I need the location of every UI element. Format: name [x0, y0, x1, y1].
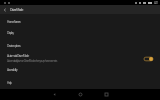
button[interactable]: Device options — [0, 43, 160, 49]
button[interactable]: Display — [0, 30, 160, 36]
staticText: Device options — [7, 44, 21, 48]
button[interactable]: Home — [74, 89, 86, 100]
button[interactable]: Back — [48, 89, 60, 100]
staticText: 4:21 — [154, 1, 158, 5]
staticText: Help — [7, 81, 12, 85]
staticText: Accessibility — [7, 68, 17, 72]
staticText: Display — [7, 31, 14, 35]
button[interactable]: Recents — [100, 89, 112, 100]
button[interactable]: Toggle automatic Driver Mode — [144, 56, 153, 62]
staticText: Automatic Driver Mode — [7, 54, 29, 58]
staticText: Home Screen — [7, 20, 21, 24]
staticText: Driver Mode — [10, 7, 23, 12]
button[interactable]: Accessibility — [0, 67, 160, 73]
staticText: Automatically turn on Driver Mode when y… — [7, 59, 57, 63]
button[interactable]: Automatic Driver Mode — [0, 53, 160, 64]
button[interactable]: Back — [0, 5, 9, 14]
button[interactable]: Help — [0, 80, 160, 86]
